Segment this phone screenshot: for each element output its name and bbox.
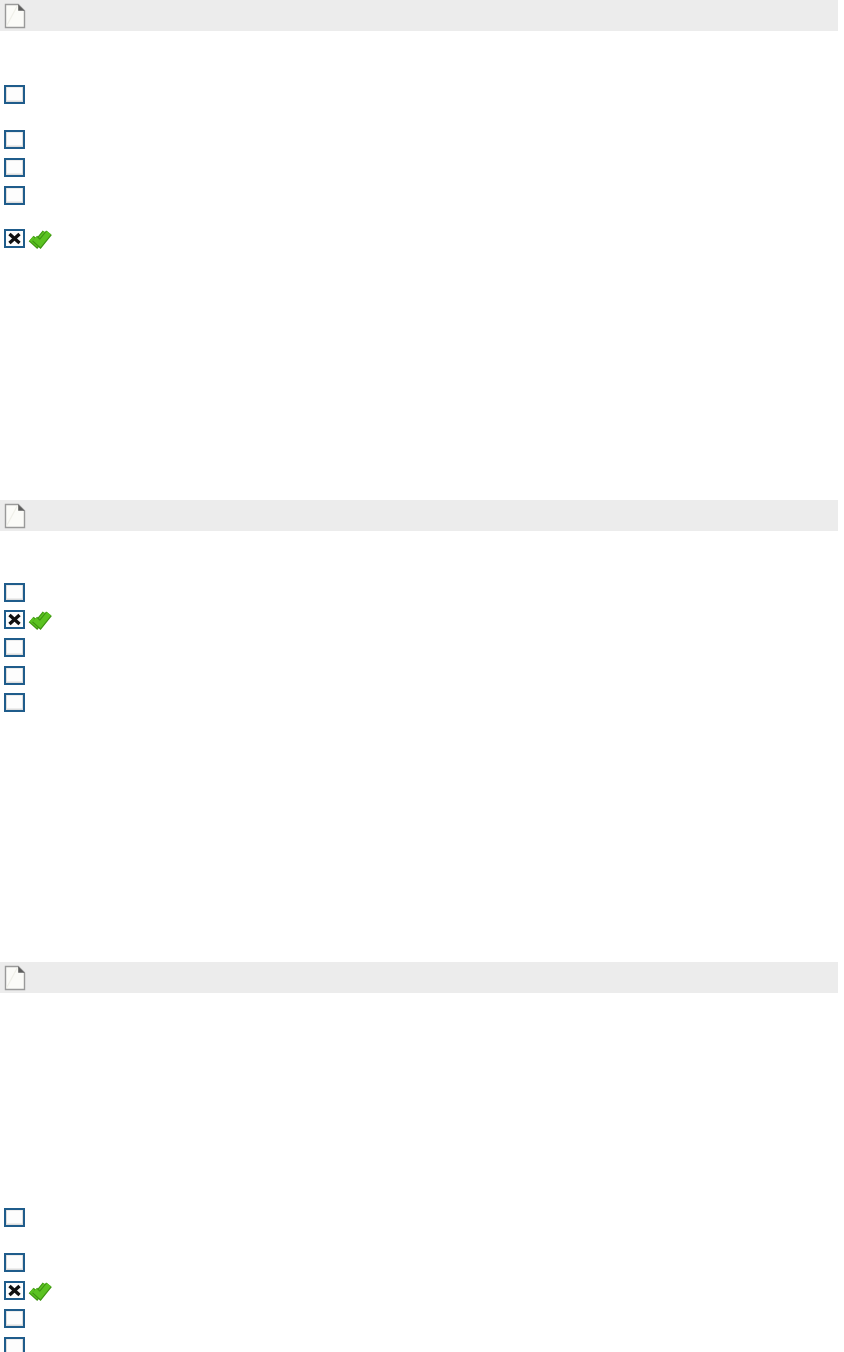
button[interactable]: Option 1 [0,85,844,111]
button[interactable]: Option 8 [0,638,844,664]
button[interactable]: Option 13 selected [0,1281,844,1307]
button[interactable]: Option 4 [0,186,844,212]
button[interactable]: Option 11 [0,1208,844,1234]
button[interactable]: Section 3 document [0,962,838,993]
button[interactable]: Section 2 document [0,500,838,531]
button[interactable]: Option 2 [0,130,844,156]
button[interactable]: Option 5 selected [0,229,844,255]
button[interactable]: Option 15 [0,1337,844,1352]
button[interactable]: Option 14 [0,1309,844,1335]
button[interactable]: Option 3 [0,158,844,184]
button[interactable]: Option 9 [0,666,844,692]
button[interactable]: Section 1 document [0,0,838,31]
button[interactable]: Option 12 [0,1253,844,1279]
button[interactable]: Option 10 [0,693,844,719]
button[interactable]: Option 6 [0,583,844,609]
button[interactable]: Option 7 selected [0,610,844,636]
